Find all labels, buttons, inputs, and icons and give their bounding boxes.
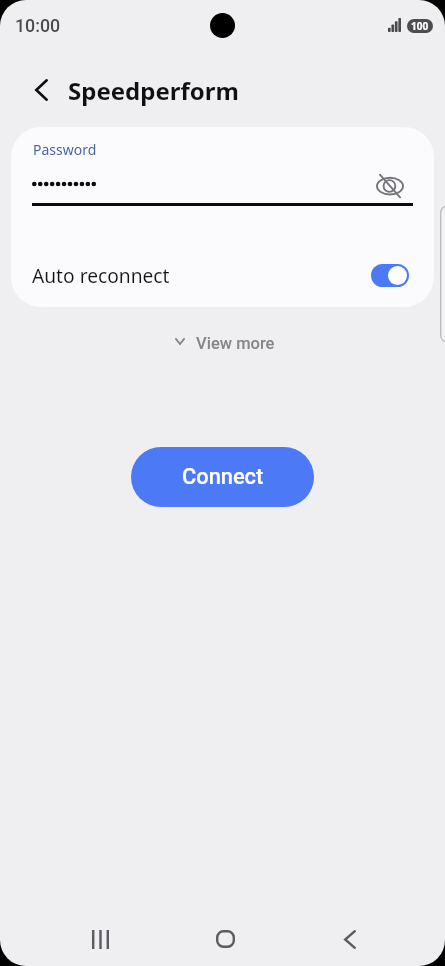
button[interactable]: Home — [201, 915, 249, 963]
staticText: Password — [33, 140, 97, 159]
button[interactable]: Navigate up — [20, 69, 62, 111]
staticText: Auto reconnect — [32, 262, 371, 288]
button[interactable]: Connect — [131, 447, 314, 507]
staticText: View more — [196, 334, 275, 353]
button[interactable]: Show password — [365, 161, 415, 211]
staticText: Connect — [182, 464, 264, 490]
button[interactable]: Recent apps — [76, 915, 124, 963]
button[interactable]: Back — [326, 915, 374, 963]
staticText: 100 — [411, 19, 429, 33]
staticText: 10:00 — [15, 15, 61, 36]
button[interactable]: View more — [160, 328, 285, 359]
button[interactable]: Auto reconnect — [11, 253, 434, 297]
staticText: Speedperform — [68, 74, 239, 107]
